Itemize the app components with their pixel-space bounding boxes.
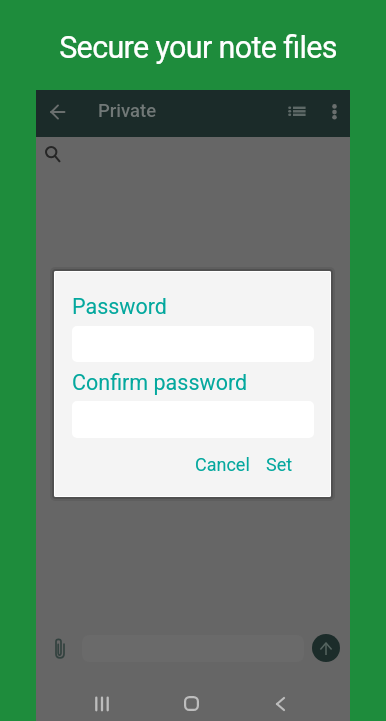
button[interactable]: Back [262, 685, 299, 721]
staticText: Cancel [195, 454, 250, 475]
staticText: Secure your note files [5, 30, 386, 66]
button[interactable]: Send [312, 634, 340, 662]
button[interactable]: Search [36, 137, 68, 169]
button[interactable]: Set [258, 446, 301, 483]
button[interactable]: Recents [83, 685, 120, 721]
staticText: Confirm password [72, 370, 248, 395]
button[interactable]: Back [39, 94, 75, 130]
button[interactable]: Home [173, 685, 210, 721]
staticText: Password [72, 294, 167, 319]
button[interactable]: More options [316, 93, 352, 129]
staticText: Private [98, 100, 157, 122]
button[interactable]: Attach file [41, 630, 78, 667]
button[interactable]: Cancel [187, 446, 258, 483]
staticText: Set [266, 454, 293, 475]
button[interactable]: List view [279, 93, 315, 129]
